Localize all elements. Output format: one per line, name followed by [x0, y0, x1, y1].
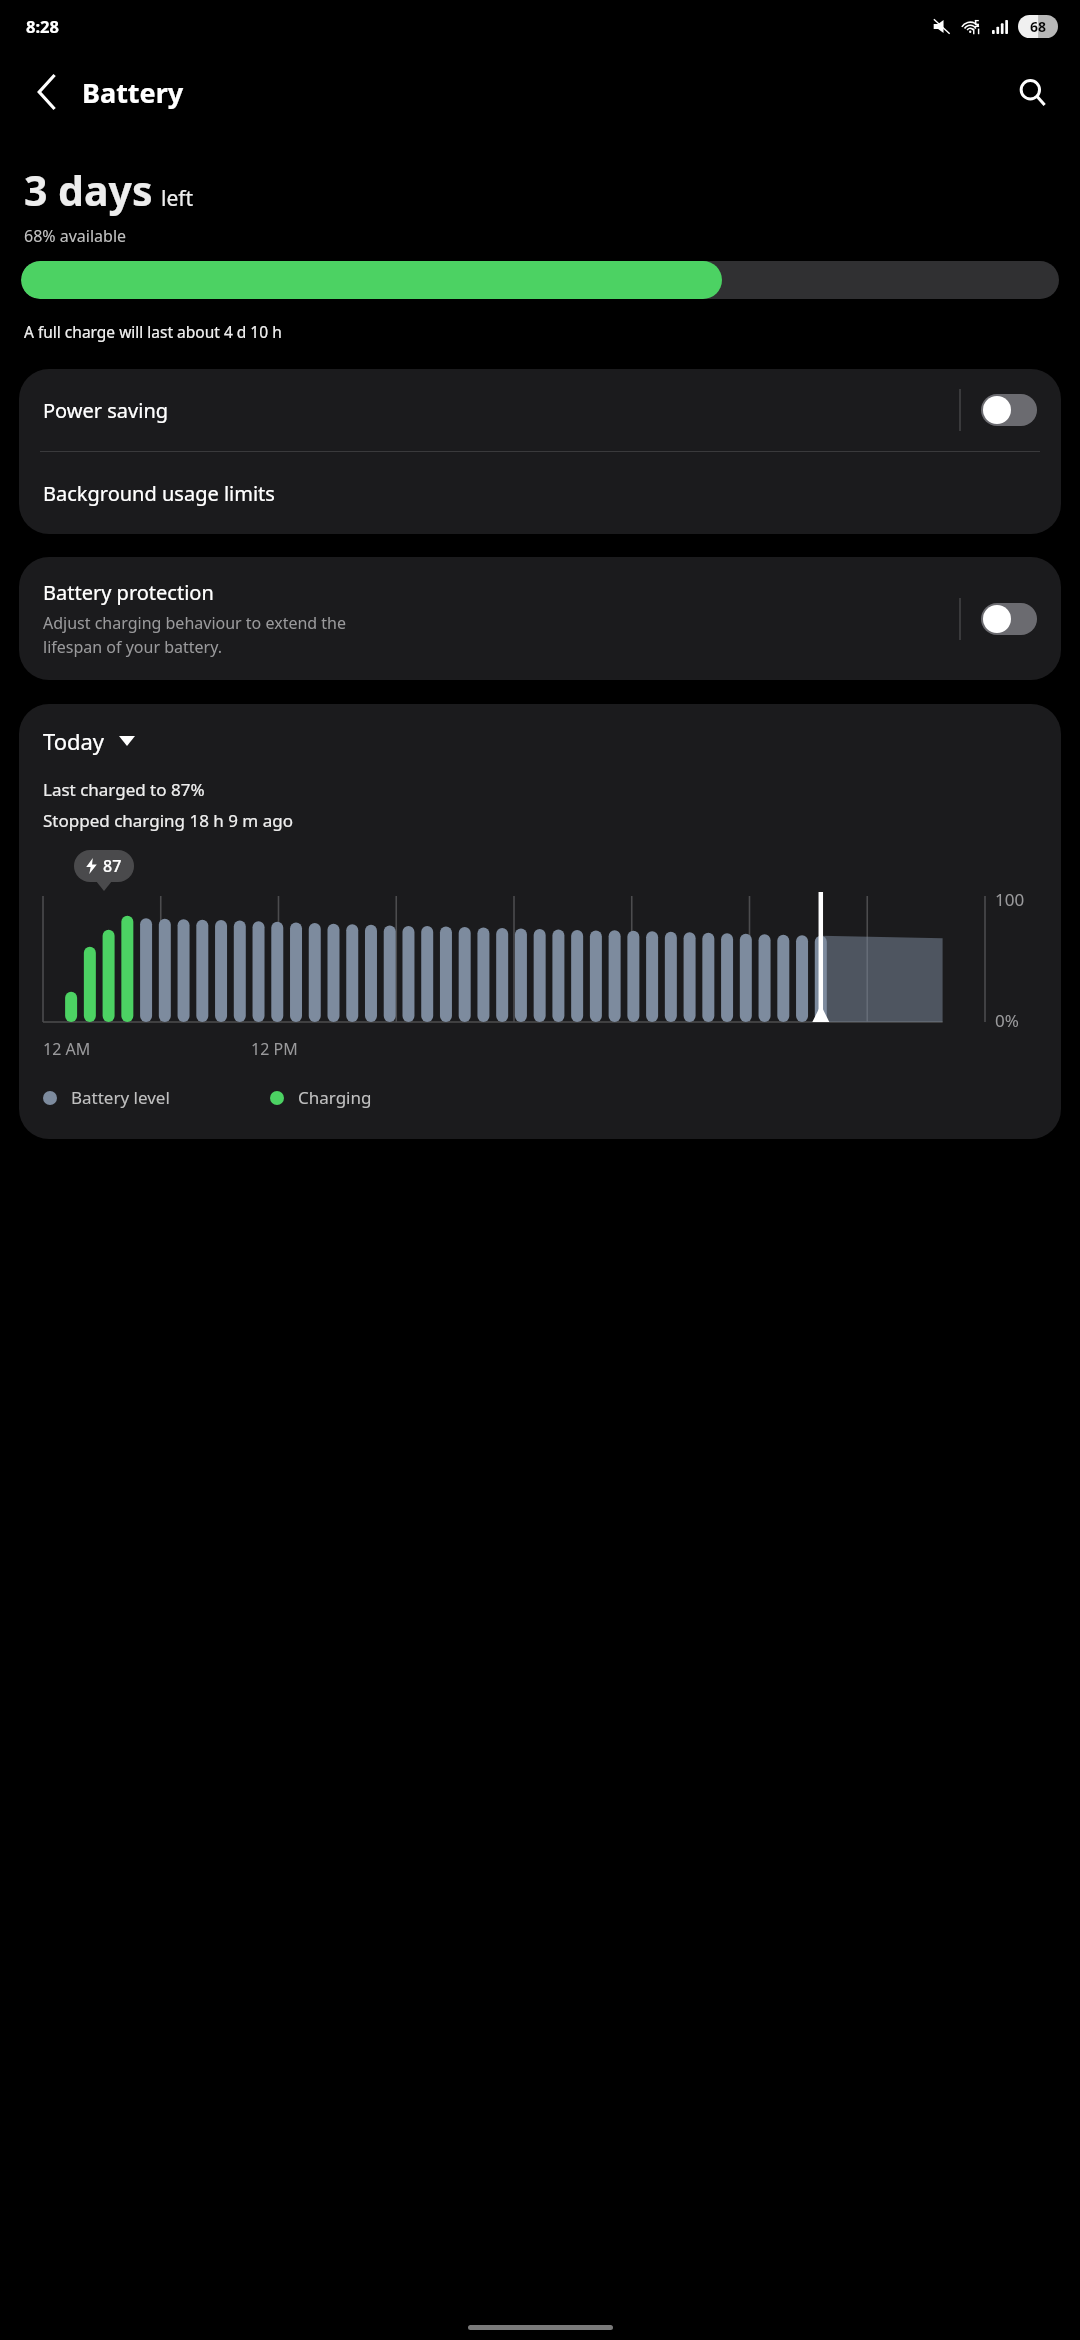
- staticText: Stopped charging 18 h 9 m ago: [43, 809, 293, 832]
- staticText: Background usage limits: [43, 480, 275, 507]
- staticText: 68: [1030, 17, 1047, 36]
- staticText: 3 days: [24, 162, 153, 218]
- staticText: Last charged to 87%: [43, 778, 205, 801]
- staticText: 12 PM: [251, 1038, 298, 1060]
- button[interactable]: Battery protection: [19, 557, 1061, 680]
- staticText: 8:28: [26, 15, 59, 37]
- button[interactable]: Today: [43, 726, 135, 756]
- staticText: Battery level: [71, 1086, 170, 1109]
- button[interactable]: Power saving toggle: [981, 394, 1037, 426]
- staticText: 68% available: [24, 225, 127, 247]
- staticText: 0%: [995, 1009, 1019, 1032]
- staticText: A full charge will last about 4 d 10 h: [24, 321, 282, 342]
- staticText: 100: [995, 888, 1025, 911]
- staticText: Adjust charging behaviour to extend the …: [43, 612, 347, 658]
- button[interactable]: Search: [1006, 66, 1058, 118]
- button[interactable]: Power saving: [19, 369, 1061, 451]
- staticText: Charging: [298, 1086, 372, 1109]
- staticText: Battery protection: [43, 579, 214, 606]
- button[interactable]: Background usage limits: [19, 452, 1061, 534]
- staticText: Power saving: [43, 397, 959, 424]
- staticText: Battery: [82, 74, 184, 111]
- staticText: 87: [103, 855, 122, 877]
- staticText: 12 AM: [43, 1038, 91, 1060]
- staticText: Today: [43, 726, 105, 756]
- button[interactable]: Battery protection toggle: [981, 603, 1037, 635]
- staticText: left: [161, 184, 194, 213]
- button[interactable]: Back: [24, 68, 72, 116]
